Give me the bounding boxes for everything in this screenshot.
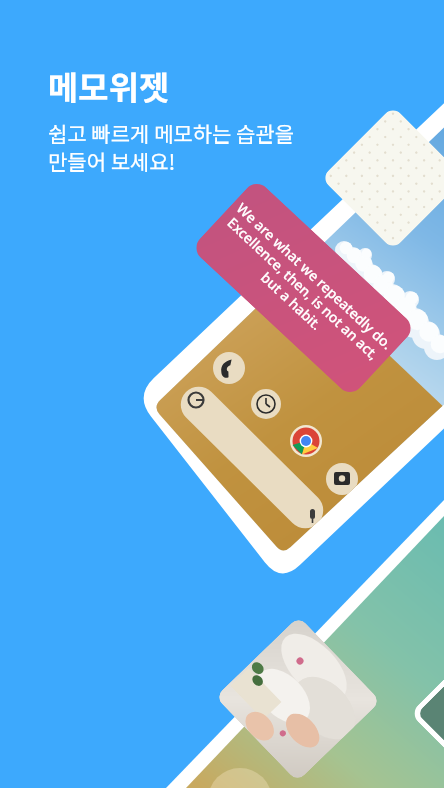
staticText: 쉽고 빠르게 메모하는 습관을 만들어 보세요!	[48, 118, 294, 176]
staticText: We are what we repeatedly do. Excellence…	[209, 198, 397, 378]
staticText: 메모위젯	[48, 62, 170, 110]
